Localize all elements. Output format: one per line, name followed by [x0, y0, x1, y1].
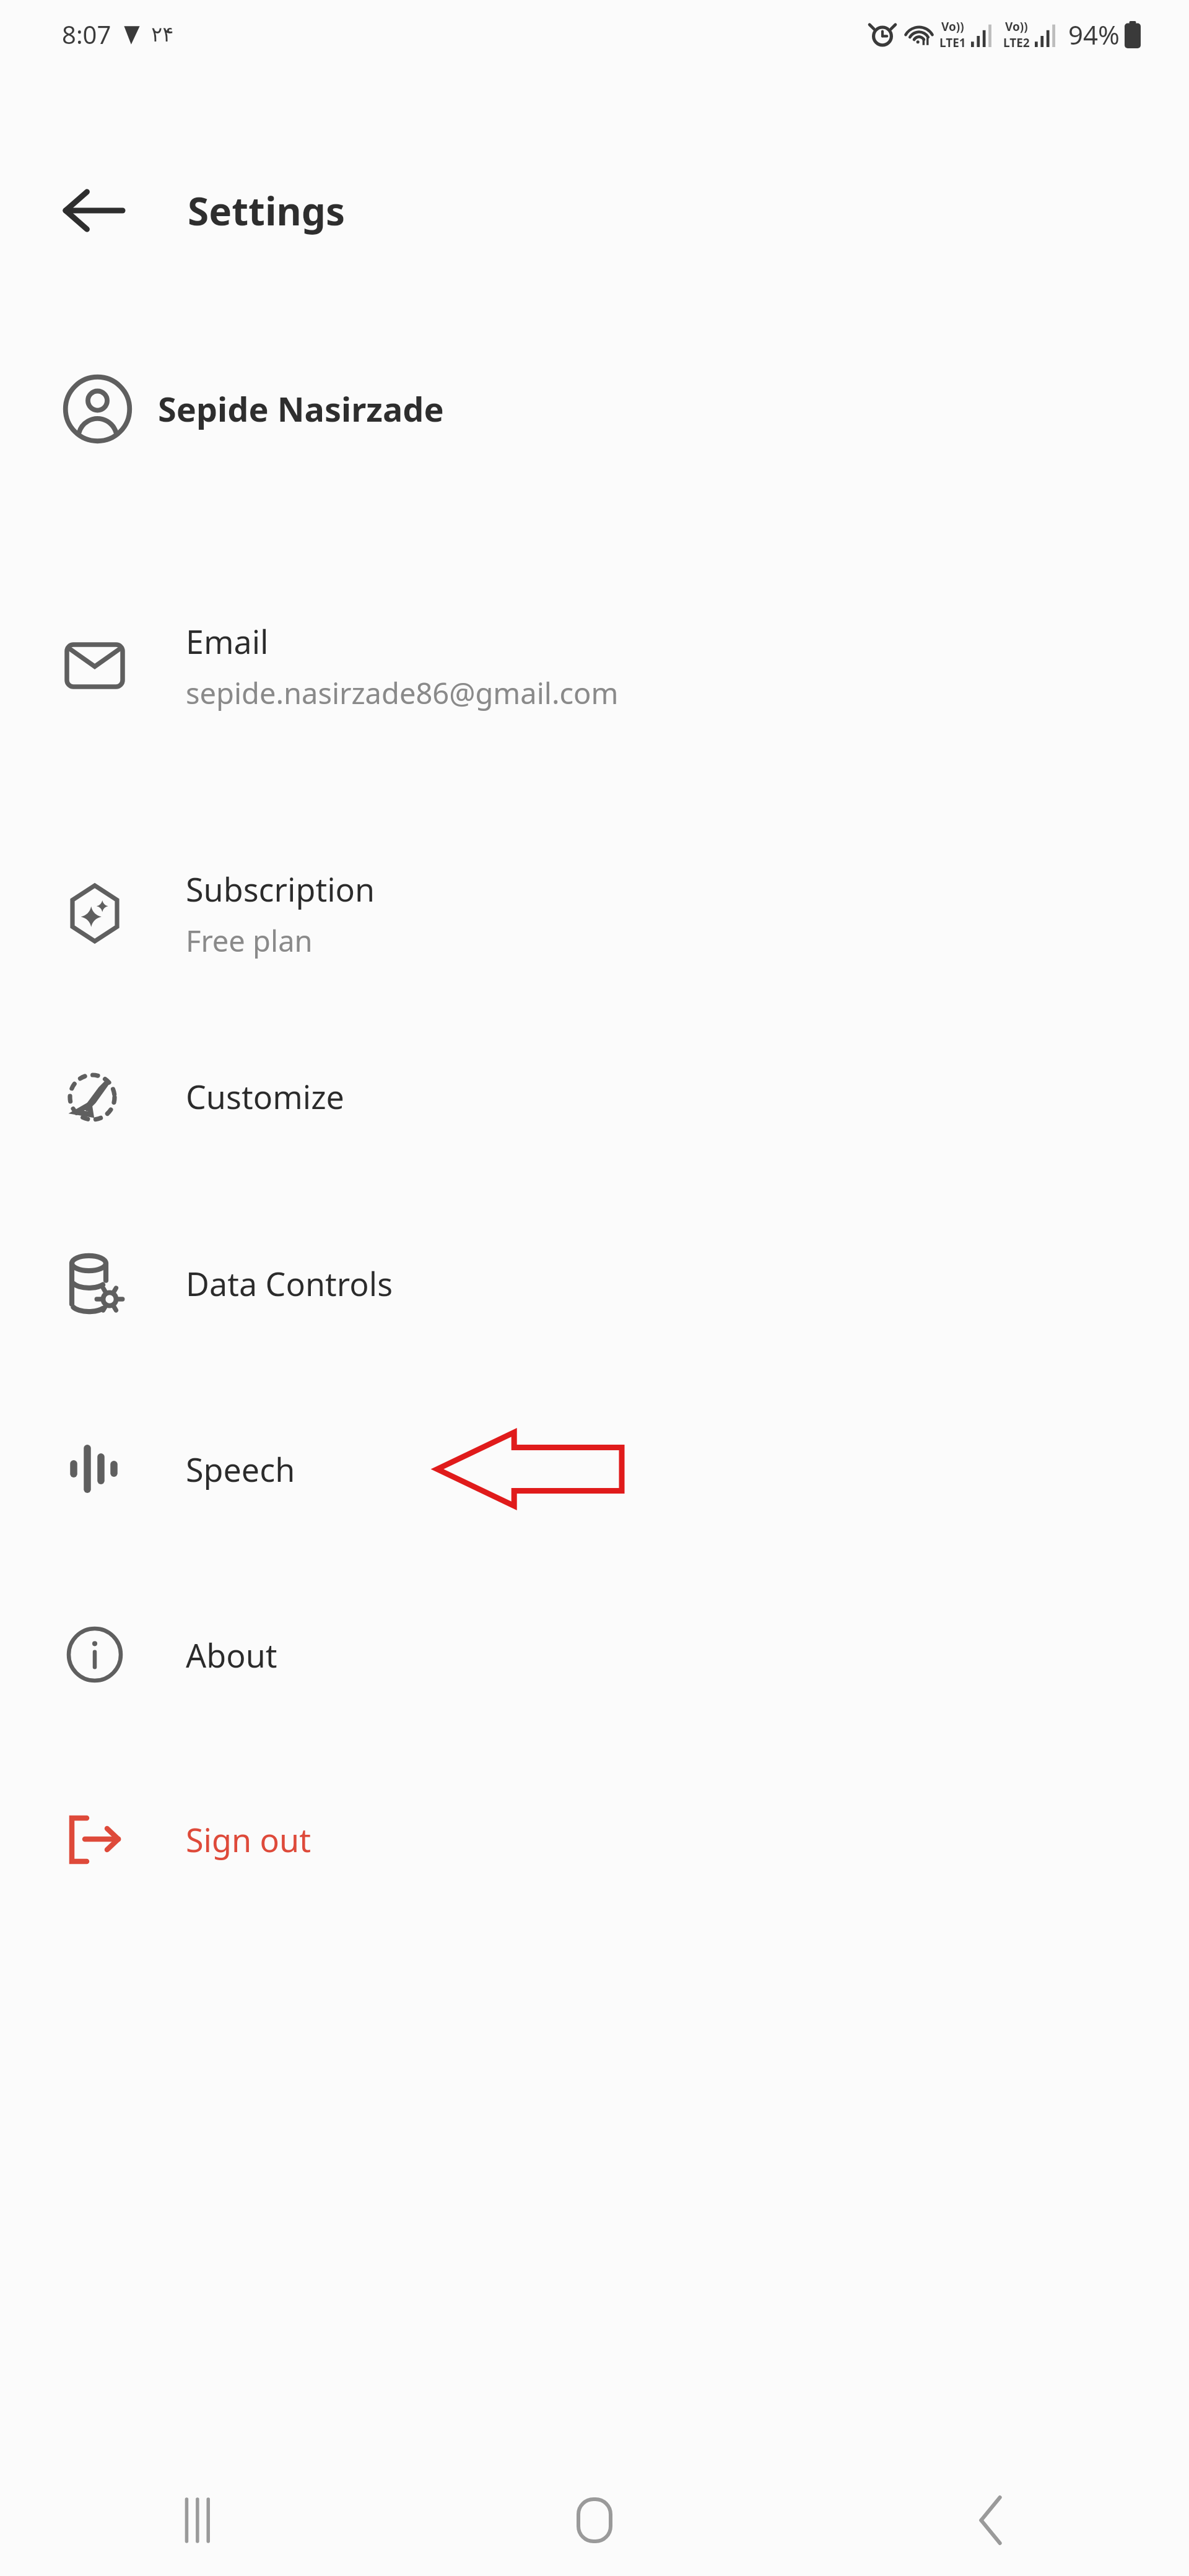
button[interactable]: Home	[396, 2465, 793, 2576]
staticText: Free plan	[186, 921, 313, 960]
staticText: Sign out	[186, 1817, 311, 1861]
staticText: Vo))	[1005, 19, 1028, 35]
staticText: Email	[186, 619, 269, 663]
staticText: ۲۴	[151, 22, 174, 46]
button[interactable]: Sign out	[0, 1790, 1189, 1889]
staticText: Sepide Nasirzade	[158, 386, 444, 432]
staticText: Speech	[186, 1447, 295, 1491]
staticText: LTE1	[939, 35, 966, 51]
button[interactable]: Customize	[0, 1046, 1189, 1146]
staticText: Vo))	[941, 19, 964, 35]
button[interactable]: Back	[43, 167, 142, 254]
staticText: Settings	[188, 185, 346, 237]
button[interactable]: About	[0, 1605, 1189, 1704]
button[interactable]: Back	[793, 2465, 1189, 2576]
staticText: 8:07	[62, 17, 111, 51]
button[interactable]: Data Controls	[0, 1234, 1189, 1333]
button[interactable]: Subscription	[0, 842, 1189, 985]
staticText: 94%	[1068, 17, 1120, 52]
staticText: Data Controls	[186, 1261, 393, 1305]
button[interactable]: Sepide Nasirzade	[0, 365, 1189, 452]
button[interactable]: Recents	[0, 2465, 396, 2576]
staticText: LTE2	[1003, 35, 1030, 51]
staticText: Customize	[186, 1074, 344, 1118]
button[interactable]: Email	[0, 594, 1189, 737]
staticText: sepide.nasirzade86@gmail.com	[186, 673, 619, 713]
button[interactable]: Speech	[0, 1419, 1189, 1518]
staticText: Subscription	[186, 867, 375, 911]
staticText: About	[186, 1633, 277, 1677]
